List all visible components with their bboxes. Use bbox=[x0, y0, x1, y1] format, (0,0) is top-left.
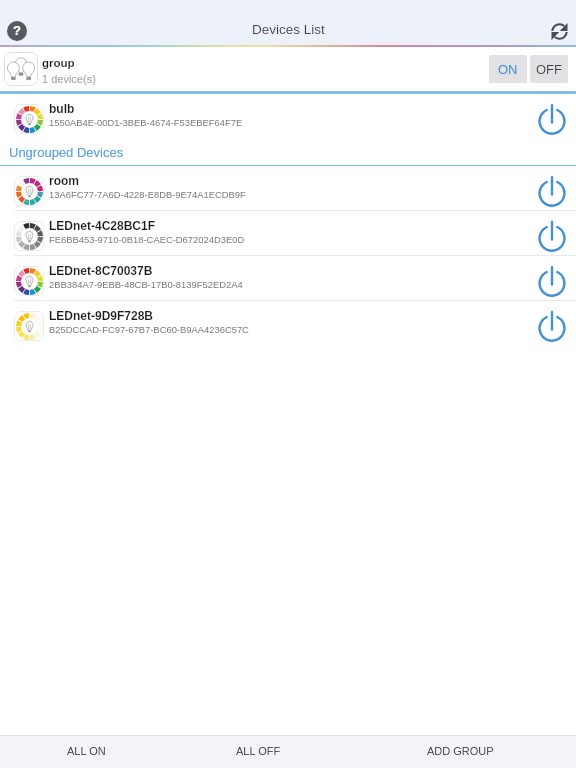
staticText: group bbox=[42, 57, 75, 70]
button[interactable]: Power bbox=[537, 267, 567, 297]
staticText: 1550AB4E-00D1-3BEB-4674-F53EBEF64F7E bbox=[49, 117, 243, 128]
button[interactable]: OFF bbox=[530, 55, 568, 83]
staticText: ON bbox=[498, 62, 518, 77]
staticText: OFF bbox=[536, 62, 562, 77]
button[interactable]: Refresh bbox=[545, 17, 573, 45]
button[interactable]: group bbox=[0, 47, 576, 91]
staticText: 2BB384A7-9EBB-48CB-17B0-8139F52ED2A4 bbox=[49, 279, 243, 290]
button[interactable]: bulb bbox=[0, 94, 576, 138]
button[interactable]: Power bbox=[537, 105, 567, 135]
button[interactable]: Help bbox=[2, 16, 31, 45]
staticText: ADD GROUP bbox=[427, 745, 494, 757]
staticText: 1 device(s) bbox=[42, 73, 96, 85]
staticText: ? bbox=[13, 23, 21, 38]
button[interactable]: Power bbox=[537, 312, 567, 342]
staticText: LEDnet-4C28BC1F bbox=[49, 219, 156, 232]
staticText: 13A6FC77-7A6D-4228-E8DB-9E74A1ECDB9F bbox=[49, 189, 246, 200]
staticText: LEDnet-9D9F728B bbox=[49, 309, 154, 322]
staticText: ALL ON bbox=[67, 745, 106, 757]
button[interactable]: ALL OFF bbox=[224, 736, 293, 766]
staticText: ALL OFF bbox=[236, 745, 281, 757]
staticText: B25DCCAD-FC97-67B7-BC60-B9AA4236C57C bbox=[49, 324, 249, 335]
staticText: Devices List bbox=[252, 22, 325, 37]
staticText: Ungrouped Devices bbox=[9, 145, 124, 160]
staticText: FE6BB453-9710-0B18-CAEC-D672024D3E0D bbox=[49, 234, 245, 245]
staticText: LEDnet-8C70037B bbox=[49, 264, 153, 277]
button[interactable]: room bbox=[0, 166, 576, 210]
button[interactable]: LEDnet-4C28BC1F bbox=[0, 211, 576, 255]
button[interactable]: Power bbox=[537, 222, 567, 252]
button[interactable]: Power bbox=[537, 177, 567, 207]
button[interactable]: LEDnet-8C70037B bbox=[0, 256, 576, 300]
button[interactable]: LEDnet-9D9F728B bbox=[0, 301, 576, 345]
button[interactable]: ON bbox=[489, 55, 527, 83]
button[interactable]: ALL ON bbox=[55, 736, 118, 766]
button[interactable]: ADD GROUP bbox=[415, 736, 506, 766]
staticText: room bbox=[49, 174, 79, 187]
staticText: bulb bbox=[49, 102, 75, 115]
